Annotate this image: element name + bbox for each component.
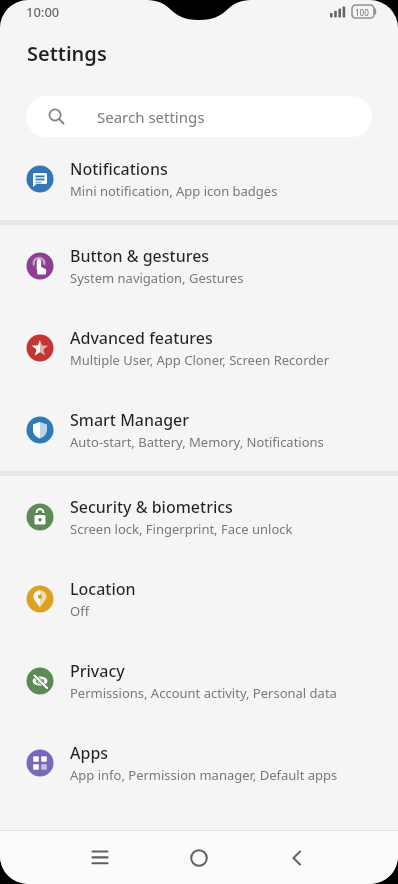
staticText: Location xyxy=(70,578,136,600)
staticText: Security & biometrics xyxy=(70,496,233,518)
staticText: Auto-start, Battery, Memory, Notificatio… xyxy=(70,433,324,451)
staticText: Screen lock, Fingerprint, Face unlock xyxy=(70,520,293,538)
staticText: Mini notification, App icon badges xyxy=(70,182,278,200)
staticText: 10:00 xyxy=(26,3,60,21)
button[interactable]: Smart Manager xyxy=(0,389,398,471)
staticText: Button & gestures xyxy=(70,245,210,267)
button[interactable]: Apps xyxy=(0,722,398,804)
button[interactable]: Search settings xyxy=(26,96,372,137)
staticText: Smart Manager xyxy=(70,409,190,431)
staticText: Permissions, Account activity, Personal … xyxy=(70,684,337,702)
staticText: Notifications xyxy=(70,158,168,180)
staticText: Multiple User, App Cloner, Screen Record… xyxy=(70,351,330,369)
staticText: Search settings xyxy=(97,107,205,127)
staticText: System navigation, Gestures xyxy=(70,269,244,287)
button[interactable]: Security & biometrics xyxy=(0,476,398,558)
staticText: 100 xyxy=(355,7,369,18)
staticText: App info, Permission manager, Default ap… xyxy=(70,766,338,784)
button[interactable]: Location xyxy=(0,558,398,640)
staticText: Settings xyxy=(27,40,107,67)
staticText: Privacy xyxy=(70,660,125,682)
button[interactable]: Privacy xyxy=(0,640,398,722)
button[interactable] xyxy=(76,834,124,882)
staticText: Off xyxy=(70,602,90,620)
button[interactable]: Notifications xyxy=(0,138,398,220)
staticText: Apps xyxy=(70,742,109,764)
button[interactable]: Advanced features xyxy=(0,307,398,389)
button[interactable] xyxy=(175,834,223,882)
button[interactable] xyxy=(273,834,321,882)
button[interactable]: Button & gestures xyxy=(0,225,398,307)
staticText: Advanced features xyxy=(70,327,213,349)
